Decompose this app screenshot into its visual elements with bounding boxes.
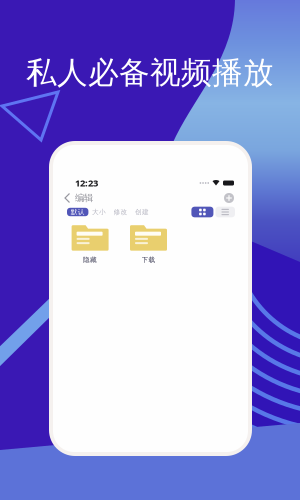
button[interactable]: 修改 (110, 208, 131, 216)
staticText: 隐藏 (83, 256, 97, 264)
staticText: 下载 (141, 256, 155, 264)
button[interactable]: Grid view (191, 207, 213, 217)
staticText: 私人必备视频播放 (26, 54, 274, 92)
staticText: 12:23 (75, 177, 98, 189)
button[interactable]: 编辑 (65, 189, 93, 207)
button[interactable]: List view (215, 207, 235, 217)
button[interactable]: Add (222, 191, 236, 205)
staticText: 创建 (135, 208, 149, 216)
staticText: 修改 (113, 208, 127, 216)
button[interactable]: 创建 (131, 208, 153, 216)
button[interactable]: 默认 (67, 208, 88, 216)
button[interactable]: 隐藏 (72, 225, 109, 264)
staticText: 编辑 (75, 192, 93, 204)
button[interactable]: 下载 (130, 225, 167, 264)
staticText: 默认 (71, 208, 85, 216)
staticText: 大小 (92, 208, 106, 216)
button[interactable]: 大小 (88, 208, 110, 216)
